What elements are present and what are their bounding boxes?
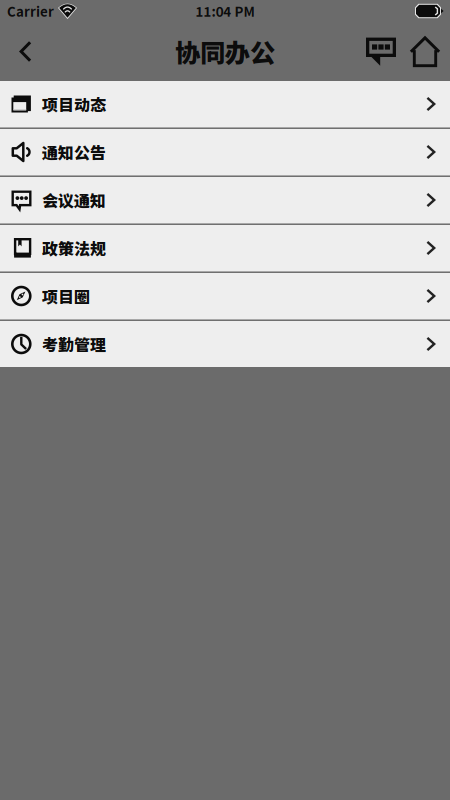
staticText: Carrier	[7, 1, 54, 21]
staticText: 考勤管理	[42, 332, 106, 356]
staticText: 项目动态	[42, 92, 106, 116]
staticText: 政策法规	[42, 236, 106, 260]
staticText: 11:04 PM	[195, 1, 254, 21]
staticText: 项目圈	[42, 284, 90, 308]
button[interactable]: Messages	[359, 22, 403, 81]
button[interactable]: 项目动态	[0, 81, 450, 127]
staticText: 会议通知	[42, 188, 106, 212]
button[interactable]: 通知公告	[0, 129, 450, 175]
staticText: 通知公告	[42, 140, 106, 164]
button[interactable]: Back	[0, 22, 52, 81]
button[interactable]: Home	[403, 22, 447, 81]
button[interactable]: 考勤管理	[0, 321, 450, 367]
button[interactable]: 政策法规	[0, 225, 450, 271]
staticText: 协同办公	[175, 33, 275, 70]
button[interactable]: 会议通知	[0, 177, 450, 223]
button[interactable]: 项目圈	[0, 273, 450, 319]
